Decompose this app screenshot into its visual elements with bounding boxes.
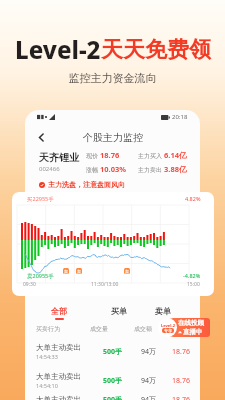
staticText: 11:30/13:00 bbox=[91, 281, 119, 288]
button[interactable]: 大单主动卖出 bbox=[36, 337, 190, 366]
staticText: 18.76 bbox=[172, 376, 190, 386]
staticText: 买单 bbox=[111, 306, 127, 316]
button[interactable]: 大单主动卖出 bbox=[36, 366, 190, 395]
button[interactable]: 在线投顾 bbox=[158, 318, 204, 337]
staticText: 大单主动卖出 bbox=[36, 395, 81, 400]
staticText: 主力卖出 bbox=[138, 166, 164, 174]
staticText: 500手 bbox=[103, 376, 123, 386]
staticText: 15:00 bbox=[187, 281, 200, 288]
staticText: 卖单 bbox=[155, 306, 171, 316]
staticText: 成交额 bbox=[134, 325, 152, 333]
staticText: 卖 bbox=[64, 269, 68, 274]
button[interactable]: Back bbox=[34, 130, 48, 144]
staticText: 专享 bbox=[164, 328, 172, 333]
staticText: 涨幅 bbox=[86, 166, 100, 174]
staticText: 500手 bbox=[103, 347, 123, 357]
staticText: 监控主力资金流向 bbox=[0, 71, 225, 85]
staticText: 18.76 bbox=[172, 395, 190, 400]
staticText: 14:54:10 bbox=[36, 382, 58, 389]
staticText: 大单主动卖出 bbox=[36, 343, 81, 352]
staticText: 20:18 bbox=[172, 113, 188, 121]
staticText: 成交量 bbox=[90, 325, 108, 333]
staticText: 卖 bbox=[125, 269, 129, 274]
staticText: 个股主力监控 bbox=[83, 131, 143, 144]
staticText: 卖 bbox=[77, 269, 81, 274]
staticText: 全部 bbox=[51, 306, 67, 316]
staticText: 10.03% bbox=[100, 164, 127, 174]
staticText: 6.14亿 bbox=[164, 150, 187, 160]
staticText: Level-2 bbox=[15, 33, 101, 66]
staticText: 现价 bbox=[86, 152, 100, 160]
staticText: 价格 bbox=[178, 325, 190, 333]
staticText: 主力洗盘，注意盘面风向 bbox=[48, 180, 125, 189]
staticText: 3.88亿 bbox=[164, 164, 187, 174]
staticText: 14:54:33 bbox=[36, 353, 58, 360]
staticText: 买22955手 bbox=[27, 195, 54, 203]
button[interactable]: 全部 bbox=[44, 305, 74, 325]
staticText: -4.82% bbox=[183, 272, 201, 279]
staticText: 卖20955手 bbox=[27, 272, 54, 280]
staticText: 94万 bbox=[141, 347, 157, 357]
staticText: 直播中 bbox=[183, 328, 203, 336]
staticText: 09:30 bbox=[23, 281, 36, 288]
button[interactable]: 大单主动卖出 bbox=[36, 395, 190, 400]
staticText: 18.76 bbox=[100, 150, 120, 160]
staticText: 4.82% bbox=[185, 195, 201, 202]
staticText: 大单主动卖出 bbox=[36, 372, 81, 381]
staticText: 买卖行为 bbox=[36, 325, 60, 333]
staticText: 94万 bbox=[141, 376, 157, 386]
staticText: Level-2 bbox=[161, 323, 175, 328]
staticText: 天齐锂业 bbox=[39, 151, 79, 164]
staticText: 18.76 bbox=[172, 347, 190, 357]
button[interactable]: 买单 bbox=[104, 305, 134, 325]
staticText: 在线投顾 bbox=[178, 319, 204, 327]
button[interactable]: 卖单 bbox=[148, 305, 178, 325]
staticText: 主力买入 bbox=[138, 152, 164, 160]
staticText: 94万 bbox=[141, 395, 157, 400]
staticText: 天天免费领 bbox=[101, 36, 211, 64]
staticText: 002466 bbox=[39, 165, 60, 173]
staticText: 500手 bbox=[103, 395, 123, 400]
